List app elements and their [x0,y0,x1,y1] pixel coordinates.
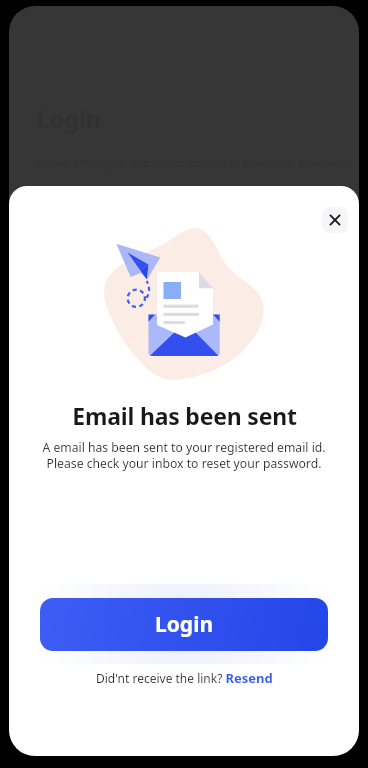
button[interactable]: Close [322,207,348,233]
button[interactable]: Did'nt receive the link? Resend [96,669,273,687]
staticText: Did'nt receive the link? Resend [96,669,273,687]
button[interactable]: Login [40,598,328,651]
staticText: Login [155,610,214,639]
staticText: A email has been sent to your registered… [42,439,326,471]
staticText: Email has been sent [72,400,297,431]
